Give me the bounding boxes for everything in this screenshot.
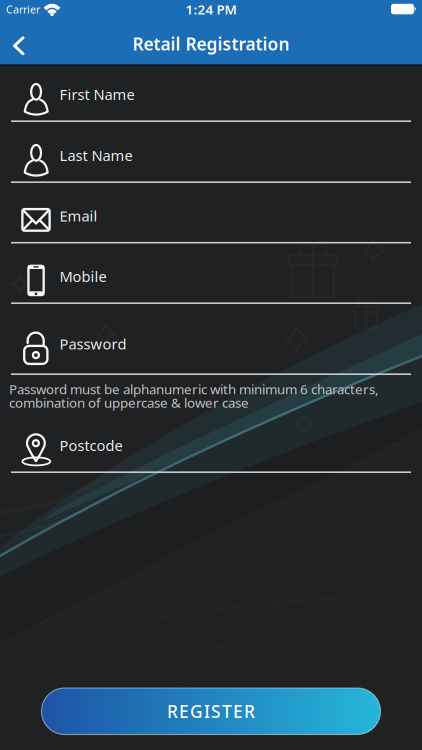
button[interactable]: Mobile bbox=[0, 243, 422, 304]
staticText: Email bbox=[59, 206, 97, 226]
button[interactable]: Last Name bbox=[0, 122, 422, 183]
button[interactable]: REGISTER bbox=[41, 688, 380, 734]
button[interactable]: Postcode bbox=[0, 408, 422, 473]
staticText: Mobile bbox=[59, 267, 106, 286]
staticText: Postcode bbox=[59, 436, 122, 455]
staticText: Retail Registration bbox=[132, 32, 289, 55]
staticText: REGISTER bbox=[167, 700, 255, 723]
staticText: Password bbox=[59, 334, 126, 354]
button[interactable]: Email bbox=[0, 183, 422, 243]
staticText: First Name bbox=[59, 85, 134, 104]
button[interactable]: Password bbox=[0, 304, 422, 375]
staticText: Password must be alphanumeric with minim… bbox=[9, 380, 379, 398]
staticText: combination of uppercase & lower case bbox=[9, 394, 249, 411]
staticText: Carrier bbox=[6, 2, 40, 16]
button[interactable]: First Name bbox=[0, 66, 422, 122]
staticText: Last Name bbox=[59, 146, 132, 165]
button[interactable]: Back bbox=[0, 25, 29, 62]
staticText: 1:24 PM bbox=[185, 0, 236, 18]
